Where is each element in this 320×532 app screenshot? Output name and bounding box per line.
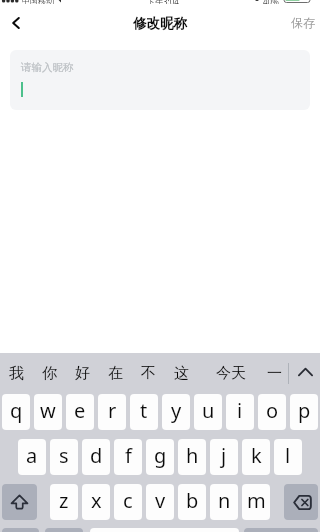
button[interactable]: t: [130, 394, 158, 430]
staticText: 一: [267, 364, 282, 383]
staticText: u: [202, 397, 215, 424]
button[interactable]: Expand candidates: [291, 353, 320, 394]
staticText: g: [154, 442, 167, 469]
button[interactable]: 一: [259, 353, 289, 394]
button[interactable]: a: [18, 439, 46, 475]
button[interactable]: r: [98, 394, 126, 430]
staticText: 请输入昵称: [21, 61, 74, 74]
staticText: 今天: [216, 364, 246, 383]
button[interactable]: o: [258, 394, 286, 430]
button[interactable]: c: [114, 484, 142, 520]
button[interactable]: j: [210, 439, 238, 475]
staticText: l: [285, 442, 291, 469]
staticText: x: [91, 487, 102, 514]
button[interactable]: Space: [90, 528, 239, 532]
staticText: 下午3:04: [147, 0, 179, 4]
staticText: 40%: [263, 0, 279, 4]
button[interactable]: 请输入昵称: [10, 50, 310, 110]
button[interactable]: b: [178, 484, 206, 520]
button[interactable]: x: [82, 484, 110, 520]
staticText: i: [237, 397, 243, 424]
button[interactable]: 在: [99, 353, 132, 394]
staticText: d: [90, 442, 103, 469]
button[interactable]: y: [162, 394, 190, 430]
button[interactable]: 123: [2, 528, 39, 532]
button[interactable]: d: [82, 439, 110, 475]
button[interactable]: m: [242, 484, 270, 520]
staticText: 保存: [291, 15, 315, 30]
staticText: m: [247, 487, 266, 514]
staticText: 在: [108, 364, 123, 383]
button[interactable]: 这: [165, 353, 198, 394]
button[interactable]: p: [290, 394, 318, 430]
button[interactable]: z: [50, 484, 78, 520]
button[interactable]: 不: [132, 353, 165, 394]
staticText: t: [140, 397, 148, 424]
staticText: n: [218, 487, 231, 514]
button[interactable]: 好: [66, 353, 99, 394]
button[interactable]: l: [274, 439, 302, 475]
staticText: a: [26, 442, 38, 469]
staticText: 我: [9, 364, 24, 383]
button[interactable]: q: [2, 394, 30, 430]
staticText: y: [171, 397, 182, 424]
staticText: 这: [174, 364, 189, 383]
staticText: e: [74, 397, 86, 424]
staticText: j: [221, 442, 227, 469]
button[interactable]: Emoji: [45, 528, 83, 532]
button[interactable]: 保存: [291, 15, 315, 30]
button[interactable]: i: [226, 394, 254, 430]
staticText: p: [298, 397, 311, 424]
staticText: 中国移动: [22, 0, 54, 4]
button[interactable]: e: [66, 394, 94, 430]
button[interactable]: v: [146, 484, 174, 520]
staticText: 不: [141, 364, 156, 383]
staticText: q: [10, 397, 23, 424]
button[interactable]: Shift: [2, 484, 37, 520]
staticText: k: [251, 442, 262, 469]
button[interactable]: u: [194, 394, 222, 430]
staticText: b: [186, 487, 199, 514]
button[interactable]: 我: [0, 353, 33, 394]
button[interactable]: n: [210, 484, 238, 520]
staticText: w: [40, 397, 56, 424]
staticText: c: [123, 487, 133, 514]
button[interactable]: f: [114, 439, 142, 475]
staticText: z: [59, 487, 69, 514]
staticText: h: [186, 442, 199, 469]
staticText: 好: [75, 364, 90, 383]
button[interactable]: w: [34, 394, 62, 430]
staticText: 你: [42, 364, 57, 383]
button[interactable]: 今天: [207, 353, 255, 394]
staticText: v: [155, 487, 166, 514]
button[interactable]: s: [50, 439, 78, 475]
button[interactable]: 你: [33, 353, 66, 394]
staticText: r: [108, 397, 117, 424]
button[interactable]: h: [178, 439, 206, 475]
button[interactable]: g: [146, 439, 174, 475]
staticText: 修改昵称: [133, 15, 187, 32]
staticText: s: [59, 442, 69, 469]
button[interactable]: Backspace: [284, 484, 318, 520]
button[interactable]: k: [242, 439, 270, 475]
staticText: o: [266, 397, 279, 424]
staticText: f: [125, 442, 132, 469]
button[interactable]: 换行: [244, 528, 318, 532]
button[interactable]: Back: [3, 10, 29, 36]
